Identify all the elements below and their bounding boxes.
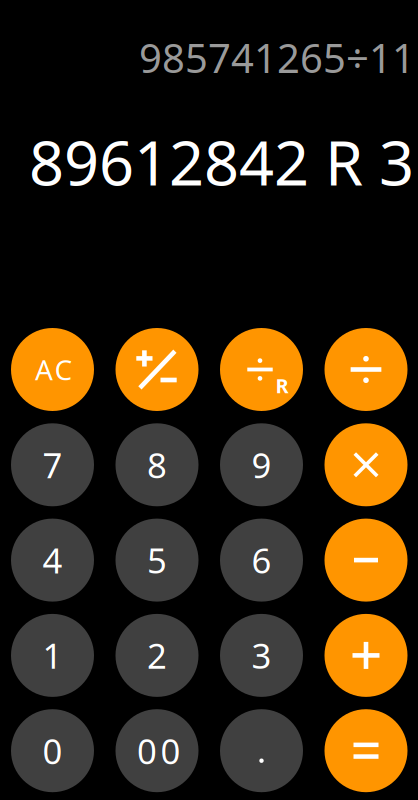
button[interactable]: Subtract bbox=[324, 519, 407, 602]
staticText: AC bbox=[35, 351, 73, 388]
staticText: 5 bbox=[147, 537, 167, 583]
staticText: 7 bbox=[42, 442, 62, 488]
staticText: 00 bbox=[137, 728, 181, 774]
staticText: 1 bbox=[42, 632, 62, 678]
button[interactable]: 3 bbox=[220, 614, 303, 697]
button[interactable]: Multiply bbox=[324, 423, 407, 506]
button[interactable]: 0 bbox=[11, 709, 94, 792]
button[interactable]: 7 bbox=[11, 423, 94, 506]
button[interactable]: AC bbox=[11, 328, 94, 411]
staticText: 6 bbox=[251, 537, 271, 583]
button[interactable]: 4 bbox=[11, 519, 94, 602]
button[interactable]: 6 bbox=[220, 519, 303, 602]
button[interactable]: Plus minus bbox=[115, 328, 198, 411]
staticText: 4 bbox=[42, 537, 62, 583]
button[interactable]: 2 bbox=[115, 614, 198, 697]
staticText: 2 bbox=[147, 632, 167, 678]
button[interactable]: 8 bbox=[115, 423, 198, 506]
button[interactable]: 1 bbox=[11, 614, 94, 697]
button[interactable]: Equals bbox=[324, 709, 407, 792]
staticText: R bbox=[275, 372, 288, 399]
button[interactable]: Divide bbox=[324, 328, 407, 411]
staticText: 0 bbox=[42, 728, 62, 774]
staticText: 3 bbox=[251, 632, 271, 678]
button[interactable]: 5 bbox=[115, 519, 198, 602]
button[interactable]: 00 bbox=[115, 709, 198, 792]
button[interactable]: Divide with remainder bbox=[220, 328, 303, 411]
staticText: 985741265÷11 bbox=[139, 31, 415, 84]
staticText: 9 bbox=[251, 442, 271, 488]
staticText: 8 bbox=[147, 442, 167, 488]
button[interactable]: Decimal point bbox=[220, 709, 303, 792]
button[interactable]: 9 bbox=[220, 423, 303, 506]
button[interactable]: Add bbox=[324, 614, 407, 697]
staticText: 89612842 R 3 bbox=[29, 121, 414, 202]
